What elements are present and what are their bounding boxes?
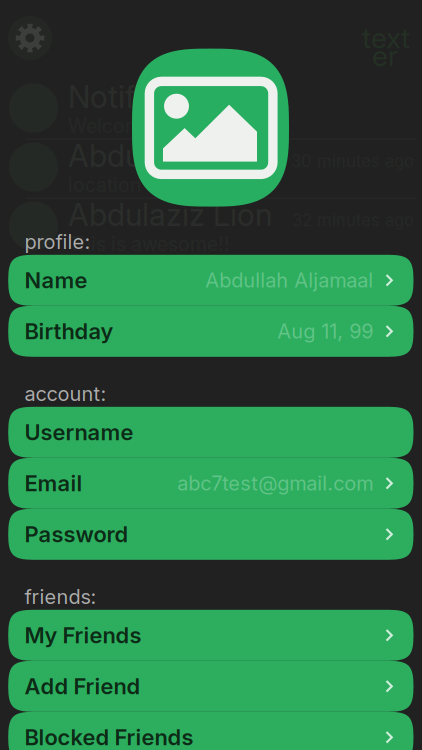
staticText: My Friends: [24, 622, 141, 649]
staticText: Abdulaziz Lion: [68, 196, 272, 233]
button[interactable]: Add Friend: [8, 661, 413, 712]
staticText: Password: [24, 521, 128, 548]
staticText: account:: [24, 382, 106, 406]
button[interactable]: Email: [8, 458, 413, 509]
staticText: Welcome!: [68, 114, 159, 138]
button[interactable]: Username: [8, 407, 413, 458]
staticText: Name: [24, 267, 87, 294]
button[interactable]: Birthday: [8, 306, 413, 357]
staticText: Birthday: [24, 318, 113, 345]
button[interactable]: My Friends: [8, 610, 413, 661]
button[interactable]: Blocked Friends: [8, 712, 413, 750]
staticText: Username: [24, 419, 133, 446]
staticText: Blocked Friends: [24, 724, 193, 750]
staticText: er: [372, 39, 398, 73]
staticText: Notifications: [68, 78, 243, 115]
button[interactable]: Password: [8, 509, 413, 560]
staticText: Email: [24, 470, 82, 497]
staticText: location: [68, 173, 141, 197]
button[interactable]: Name: [8, 255, 413, 306]
staticText: Abdullah Aljamaal: [205, 268, 373, 292]
staticText: abc7test@gmail.com: [177, 471, 373, 495]
staticText: Abdul_: [68, 137, 163, 174]
staticText: friends:: [24, 585, 96, 609]
staticText: This is awesome!!: [68, 232, 230, 256]
staticText: text: [362, 21, 410, 55]
staticText: Add Friend: [24, 673, 140, 700]
staticText: profile:: [24, 230, 90, 254]
staticText: Aug 11, 99: [277, 319, 373, 343]
